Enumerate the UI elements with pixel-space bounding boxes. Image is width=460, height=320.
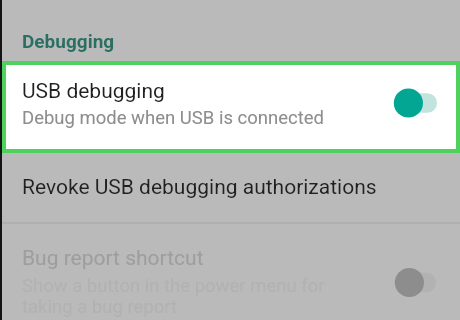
staticText: Debugging xyxy=(22,30,115,52)
staticText: Revoke USB debugging authorizations xyxy=(22,175,377,200)
button[interactable]: Bug report shortcut xyxy=(0,224,460,320)
button[interactable]: Toggle USB debugging xyxy=(393,88,437,118)
staticText: Bug report shortcut xyxy=(22,246,204,271)
button[interactable]: USB debugging xyxy=(6,65,456,149)
button[interactable]: Revoke USB debugging authorizations xyxy=(0,153,460,222)
staticText: Debug mode when USB is connected xyxy=(22,107,325,129)
staticText: USB debugging xyxy=(22,79,165,104)
button[interactable]: Toggle bug report shortcut xyxy=(394,268,436,297)
